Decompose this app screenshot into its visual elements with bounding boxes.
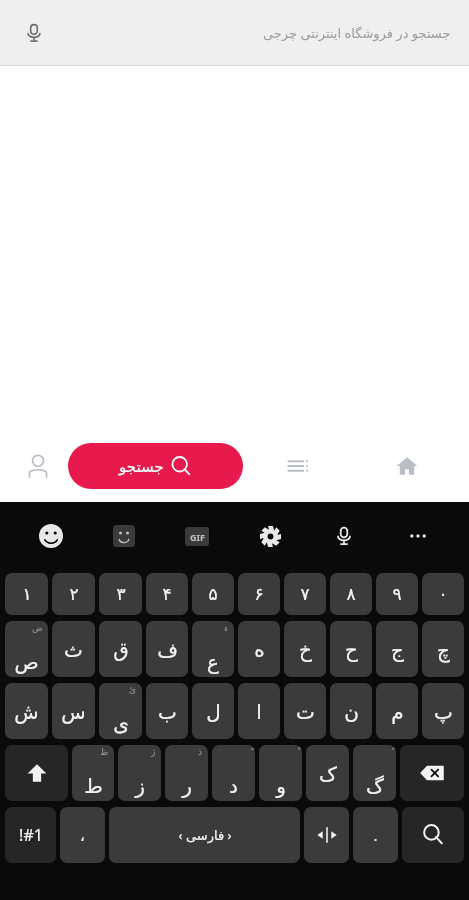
button[interactable]: ئ bbox=[99, 683, 142, 739]
staticText: ئ bbox=[129, 685, 137, 695]
button[interactable]: GIF bbox=[160, 502, 233, 570]
button[interactable]: More options bbox=[381, 502, 455, 570]
staticText: ه bbox=[254, 638, 265, 661]
staticText: ع bbox=[207, 650, 219, 673]
staticText: خ bbox=[299, 638, 312, 661]
staticText: ا bbox=[256, 700, 262, 723]
button[interactable]: ک bbox=[306, 745, 349, 801]
button[interactable]: ج bbox=[376, 621, 418, 677]
button[interactable]: 🔍 bbox=[402, 807, 464, 863]
button[interactable]: س bbox=[52, 683, 95, 739]
button[interactable]: Voice input bbox=[307, 502, 381, 570]
staticText: ح bbox=[345, 638, 358, 661]
button[interactable]: ۷ bbox=[284, 573, 326, 615]
button[interactable]: . bbox=[353, 807, 398, 863]
staticText: م bbox=[391, 700, 404, 723]
button[interactable]: Voice search bbox=[14, 13, 54, 53]
staticText: !#1 bbox=[19, 824, 43, 846]
staticText: ت bbox=[296, 700, 315, 723]
button[interactable]: ف bbox=[146, 621, 188, 677]
button[interactable]: ه bbox=[238, 621, 280, 677]
button[interactable]: ْ bbox=[259, 745, 302, 801]
staticText: ض bbox=[32, 623, 43, 633]
button[interactable] bbox=[400, 745, 464, 801]
staticText: ش bbox=[14, 700, 39, 723]
button[interactable]: ، bbox=[60, 807, 105, 863]
button[interactable]: ۴ bbox=[146, 573, 188, 615]
staticText: ن bbox=[344, 700, 359, 723]
staticText: ق bbox=[113, 638, 129, 661]
button[interactable]: ت bbox=[284, 683, 326, 739]
staticText: ، bbox=[80, 827, 85, 844]
staticText: ذ bbox=[198, 747, 203, 757]
staticText: گ bbox=[366, 774, 384, 797]
button[interactable]: پ bbox=[422, 683, 464, 739]
staticText: پ bbox=[434, 700, 453, 723]
button[interactable]: ق bbox=[99, 621, 142, 677]
staticText: و bbox=[276, 774, 286, 797]
staticText: ۳ bbox=[116, 584, 126, 604]
staticText: ب bbox=[158, 700, 177, 723]
button[interactable]: ح bbox=[330, 621, 372, 677]
staticText: ۱ bbox=[22, 584, 32, 604]
button[interactable]: ۵ bbox=[192, 573, 234, 615]
button[interactable]: ۶ bbox=[238, 573, 280, 615]
button[interactable]: Voice search bbox=[0, 0, 469, 66]
button[interactable]: ۱ bbox=[5, 573, 48, 615]
staticText: . bbox=[373, 825, 378, 845]
button[interactable]: ّ bbox=[212, 745, 255, 801]
button[interactable]: ۰ bbox=[422, 573, 464, 615]
staticText: ۵ bbox=[208, 584, 218, 604]
staticText: ژ bbox=[151, 747, 156, 757]
button[interactable]: ۹ bbox=[376, 573, 418, 615]
button[interactable]: ژ bbox=[118, 745, 161, 801]
staticText: ط bbox=[84, 774, 103, 797]
button[interactable]: ا bbox=[238, 683, 280, 739]
button[interactable]: ذ bbox=[165, 745, 208, 801]
staticText: ۰ bbox=[438, 584, 448, 604]
staticText: ث bbox=[64, 638, 83, 661]
staticText: ر bbox=[182, 774, 192, 797]
button[interactable]: ۸ bbox=[330, 573, 372, 615]
button[interactable]: ش bbox=[5, 683, 48, 739]
staticText: ک bbox=[319, 762, 337, 785]
button[interactable]: ۳ bbox=[99, 573, 142, 615]
button[interactable]: ً bbox=[353, 745, 396, 801]
staticText: ف bbox=[157, 638, 178, 661]
staticText: GIF bbox=[190, 531, 205, 543]
staticText: ۴ bbox=[162, 584, 172, 604]
staticText: ۷ bbox=[300, 584, 310, 604]
staticText: ۲ bbox=[69, 584, 79, 604]
button[interactable]: جستجو bbox=[68, 443, 243, 489]
button[interactable]: Settings bbox=[233, 502, 307, 570]
staticText: جستجو در فروشگاه اینترنتی چرجی bbox=[263, 24, 451, 42]
button[interactable]: ل bbox=[192, 683, 234, 739]
button[interactable] bbox=[5, 745, 68, 801]
button[interactable]: Emoji bbox=[14, 502, 87, 570]
staticText: ص bbox=[14, 650, 39, 673]
staticText: س bbox=[61, 700, 86, 723]
button[interactable]: خ bbox=[284, 621, 326, 677]
button[interactable]: ء bbox=[192, 621, 234, 677]
button[interactable]: ۲ bbox=[52, 573, 95, 615]
staticText: ‹ فارسی › bbox=[178, 826, 232, 844]
staticText: ۸ bbox=[346, 584, 356, 604]
button[interactable]: Stickers bbox=[87, 502, 160, 570]
button[interactable]: Categories bbox=[243, 438, 352, 494]
staticText: ی bbox=[113, 712, 129, 735]
button[interactable]: ظ bbox=[72, 745, 114, 801]
staticText: د bbox=[229, 774, 238, 797]
button[interactable]: چ bbox=[422, 621, 464, 677]
staticText: ظ bbox=[100, 747, 109, 757]
button[interactable]: ث bbox=[52, 621, 95, 677]
staticText: ل bbox=[206, 700, 221, 723]
button[interactable]: ن bbox=[330, 683, 372, 739]
button[interactable]: ‹ فارسی › bbox=[109, 807, 300, 863]
button[interactable]: ض bbox=[5, 621, 48, 677]
button[interactable]: ب bbox=[146, 683, 188, 739]
button[interactable]: Profile bbox=[8, 438, 68, 494]
button[interactable]: Home bbox=[352, 438, 461, 494]
button[interactable]: !#1 bbox=[5, 807, 56, 863]
button[interactable]: م bbox=[376, 683, 418, 739]
button[interactable] bbox=[304, 807, 349, 863]
